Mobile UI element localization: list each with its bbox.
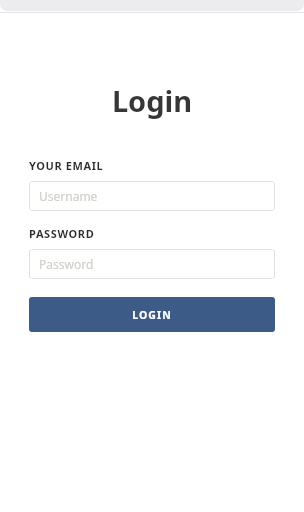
staticText: YOUR EMAIL [29, 158, 104, 173]
staticText: PASSWORD [29, 226, 95, 241]
staticText: LOGIN [132, 308, 172, 322]
staticText: Login [0, 81, 304, 120]
staticText: Username [39, 188, 98, 204]
button[interactable]: LOGIN [29, 297, 275, 332]
button[interactable]: Username [29, 181, 275, 211]
button[interactable]: Password [29, 249, 275, 279]
staticText: Password [39, 256, 94, 272]
